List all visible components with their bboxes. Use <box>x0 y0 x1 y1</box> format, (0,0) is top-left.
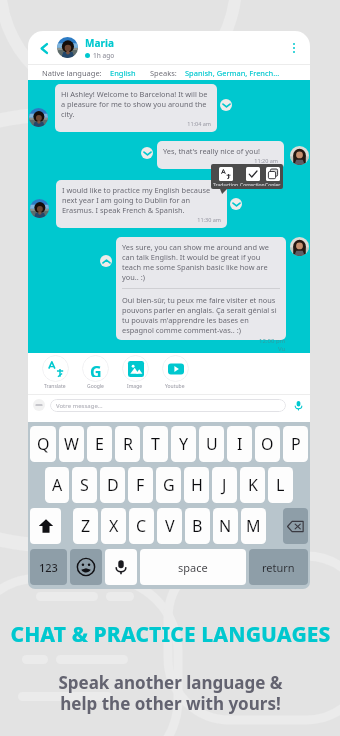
staticText: Native language: <box>42 68 102 78</box>
button[interactable]: B <box>185 508 210 544</box>
staticText: 12:00 pm <box>259 337 286 345</box>
staticText: English <box>110 68 136 78</box>
staticText: I <box>237 433 243 455</box>
button[interactable]: Image <box>115 355 155 390</box>
button[interactable]: D <box>100 467 125 503</box>
button[interactable]: N <box>213 508 238 544</box>
button[interactable]: Y <box>171 426 196 462</box>
staticText: Votre message... <box>56 402 103 410</box>
staticText: E <box>95 433 104 455</box>
staticText: X <box>109 515 119 537</box>
button[interactable]: O <box>255 426 280 462</box>
staticText: G <box>163 474 175 496</box>
button[interactable]: Dictate <box>105 549 137 585</box>
button[interactable]: W <box>59 426 84 462</box>
button[interactable]: Add attachment <box>33 399 45 411</box>
staticText: Speak another language & help the other … <box>58 671 283 715</box>
button[interactable]: return <box>249 549 308 585</box>
button[interactable]: Copier <box>265 167 281 186</box>
button[interactable]: Numbers <box>30 549 67 585</box>
button[interactable]: Translate down <box>141 147 153 159</box>
staticText: Image <box>127 383 143 390</box>
staticText: K <box>248 474 258 496</box>
button[interactable]: X <box>101 508 126 544</box>
staticText: D <box>107 474 119 496</box>
staticText: Yes sure, you can show me around and we … <box>122 242 280 282</box>
button[interactable]: Shift <box>30 508 61 544</box>
button[interactable]: Traduction <box>213 167 239 186</box>
staticText: CHAT & PRACTICE LANGUAGES <box>10 620 331 649</box>
button[interactable]: U <box>199 426 224 462</box>
button[interactable]: V <box>157 508 182 544</box>
staticText: Vu <box>278 345 286 353</box>
button[interactable]: M <box>241 508 266 544</box>
button[interactable]: Back <box>36 40 52 56</box>
staticText: 11:30 am <box>62 216 221 223</box>
button[interactable]: Correction <box>240 167 265 186</box>
button[interactable]: F <box>128 467 153 503</box>
button[interactable]: T <box>143 426 168 462</box>
button[interactable]: S <box>72 467 97 503</box>
staticText: Z <box>81 515 91 537</box>
button[interactable]: space <box>140 549 246 585</box>
button[interactable]: J <box>212 467 237 503</box>
button[interactable]: H <box>184 467 209 503</box>
staticText: T <box>151 433 160 455</box>
staticText: U <box>206 433 218 455</box>
button[interactable]: E <box>87 426 112 462</box>
staticText: A <box>52 474 63 496</box>
button[interactable]: Yes, that's really nice of you! <box>157 141 284 169</box>
button[interactable]: Votre message... <box>50 399 286 412</box>
staticText: F <box>136 474 145 496</box>
button[interactable]: Emoji <box>70 549 102 585</box>
button[interactable]: Backspace <box>283 508 308 544</box>
staticText: M <box>246 515 261 537</box>
staticText: 1h ago <box>93 51 115 60</box>
button[interactable]: Translate down <box>220 99 232 111</box>
button[interactable]: Translate down <box>230 198 242 210</box>
staticText: Yes, that's really nice of you! <box>163 146 261 156</box>
staticText: 11:04 am <box>61 120 211 127</box>
staticText: Q <box>37 433 50 455</box>
button[interactable]: Collapse <box>100 255 112 267</box>
button[interactable]: K <box>240 467 265 503</box>
button[interactable]: G <box>156 467 181 503</box>
button[interactable]: Youtube <box>155 355 195 390</box>
button[interactable]: Voice input <box>291 398 305 412</box>
button[interactable]: P <box>283 426 308 462</box>
button[interactable]: C <box>129 508 154 544</box>
button[interactable]: A <box>45 467 69 503</box>
staticText: G <box>90 361 102 377</box>
staticText: 11:20 am <box>163 157 278 164</box>
staticText: C <box>136 515 147 537</box>
staticText: space <box>178 560 208 575</box>
staticText: V <box>165 515 175 537</box>
staticText: J <box>222 474 227 496</box>
staticText: 123 <box>39 560 58 575</box>
staticText: return <box>262 560 295 575</box>
staticText: W <box>64 433 79 455</box>
staticText: Hi Ashley! Welcome to Barcelona! It will… <box>61 89 211 119</box>
button[interactable]: Translate <box>35 355 75 390</box>
button[interactable]: I would like to practice my English beca… <box>56 180 227 228</box>
staticText: O <box>261 433 274 455</box>
staticText: Copier <box>265 182 281 186</box>
button[interactable]: L <box>268 467 293 503</box>
staticText: H <box>191 474 203 496</box>
staticText: Oui bien-sûr, tu peux me faire visiter e… <box>122 295 280 335</box>
staticText: Correction <box>240 182 265 186</box>
staticText: Maria <box>85 36 114 50</box>
button[interactable]: I <box>227 426 252 462</box>
button[interactable]: Hi Ashley! Welcome to Barcelona! It will… <box>55 84 217 132</box>
staticText: R <box>123 433 133 455</box>
button[interactable]: Q <box>30 426 56 462</box>
staticText: Translate <box>44 383 66 390</box>
button[interactable]: Yes sure, you can show me around and we … <box>116 237 286 340</box>
button[interactable]: G <box>75 355 115 390</box>
staticText: L <box>276 474 285 496</box>
button[interactable]: Z <box>73 508 98 544</box>
button[interactable]: More options <box>286 40 302 56</box>
staticText: P <box>291 433 301 455</box>
staticText: Youtube <box>165 383 185 390</box>
button[interactable]: R <box>115 426 140 462</box>
